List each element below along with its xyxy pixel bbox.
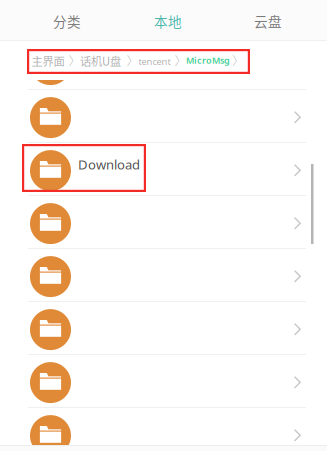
button[interactable]: 云盘 [218, 1, 318, 41]
staticText: 〉 [232, 52, 244, 69]
button[interactable] [0, 248, 327, 301]
button[interactable]: 本地 [118, 1, 218, 41]
button[interactable] [0, 354, 327, 407]
button[interactable] [0, 301, 327, 354]
button[interactable]: Download [0, 142, 327, 195]
staticText: 主界面 [31, 52, 64, 69]
staticText: tencent [138, 55, 170, 68]
staticText: 〉 [174, 52, 186, 69]
staticText: 〉 [126, 52, 138, 69]
button[interactable]: 分类 [17, 1, 117, 41]
staticText: MicroMsg [186, 54, 230, 66]
staticText: 云盘 [254, 11, 282, 31]
staticText: 话机U盘 [80, 52, 121, 69]
button[interactable] [0, 407, 327, 451]
staticText: 本地 [154, 11, 182, 31]
staticText: Download [78, 155, 140, 173]
button[interactable] [0, 195, 327, 248]
staticText: 分类 [53, 11, 81, 31]
button[interactable]: 主界面 [31, 49, 246, 69]
button[interactable] [0, 89, 327, 142]
button[interactable] [0, 36, 327, 89]
staticText: 〉 [68, 52, 80, 69]
